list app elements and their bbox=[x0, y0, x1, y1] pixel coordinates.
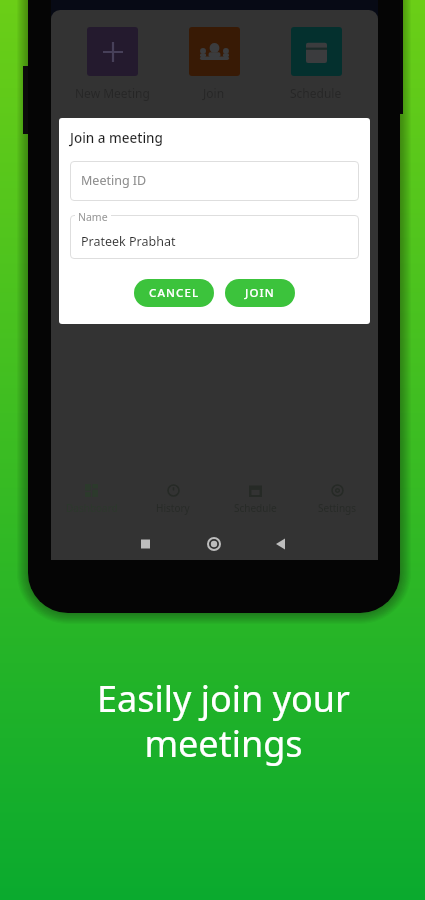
staticText: CANCEL bbox=[149, 285, 200, 301]
staticText: Prateek Prabhat bbox=[81, 233, 176, 250]
other: History bbox=[167, 484, 180, 497]
other: Join bbox=[200, 43, 229, 60]
button[interactable]: New Meeting bbox=[62, 27, 163, 101]
other: New Meeting bbox=[103, 42, 123, 62]
staticText: Join a meeting bbox=[70, 129, 163, 147]
staticText: Meeting ID bbox=[81, 172, 147, 189]
staticText: Schedule bbox=[234, 501, 277, 515]
staticText: Easily join your meetings bbox=[35, 674, 412, 768]
staticText: Name bbox=[78, 210, 108, 224]
staticText: History bbox=[156, 501, 190, 515]
button[interactable]: Prateek Prabhat bbox=[70, 215, 359, 259]
staticText: Settings bbox=[318, 501, 357, 515]
other: System navigation bbox=[51, 528, 378, 560]
staticText: Schedule bbox=[290, 85, 342, 101]
button[interactable]: Schedule bbox=[265, 27, 367, 101]
other: Settings bbox=[331, 484, 344, 497]
staticText: JOIN bbox=[245, 285, 275, 301]
other: Schedule bbox=[249, 484, 262, 497]
other: Schedule bbox=[306, 41, 327, 63]
button[interactable]: Meeting ID bbox=[70, 161, 359, 201]
button[interactable]: Join bbox=[163, 27, 265, 101]
staticText: Join bbox=[203, 85, 225, 101]
button[interactable]: JOIN bbox=[225, 279, 295, 307]
staticText: New Meeting bbox=[75, 85, 150, 101]
button[interactable]: CANCEL bbox=[134, 279, 214, 307]
